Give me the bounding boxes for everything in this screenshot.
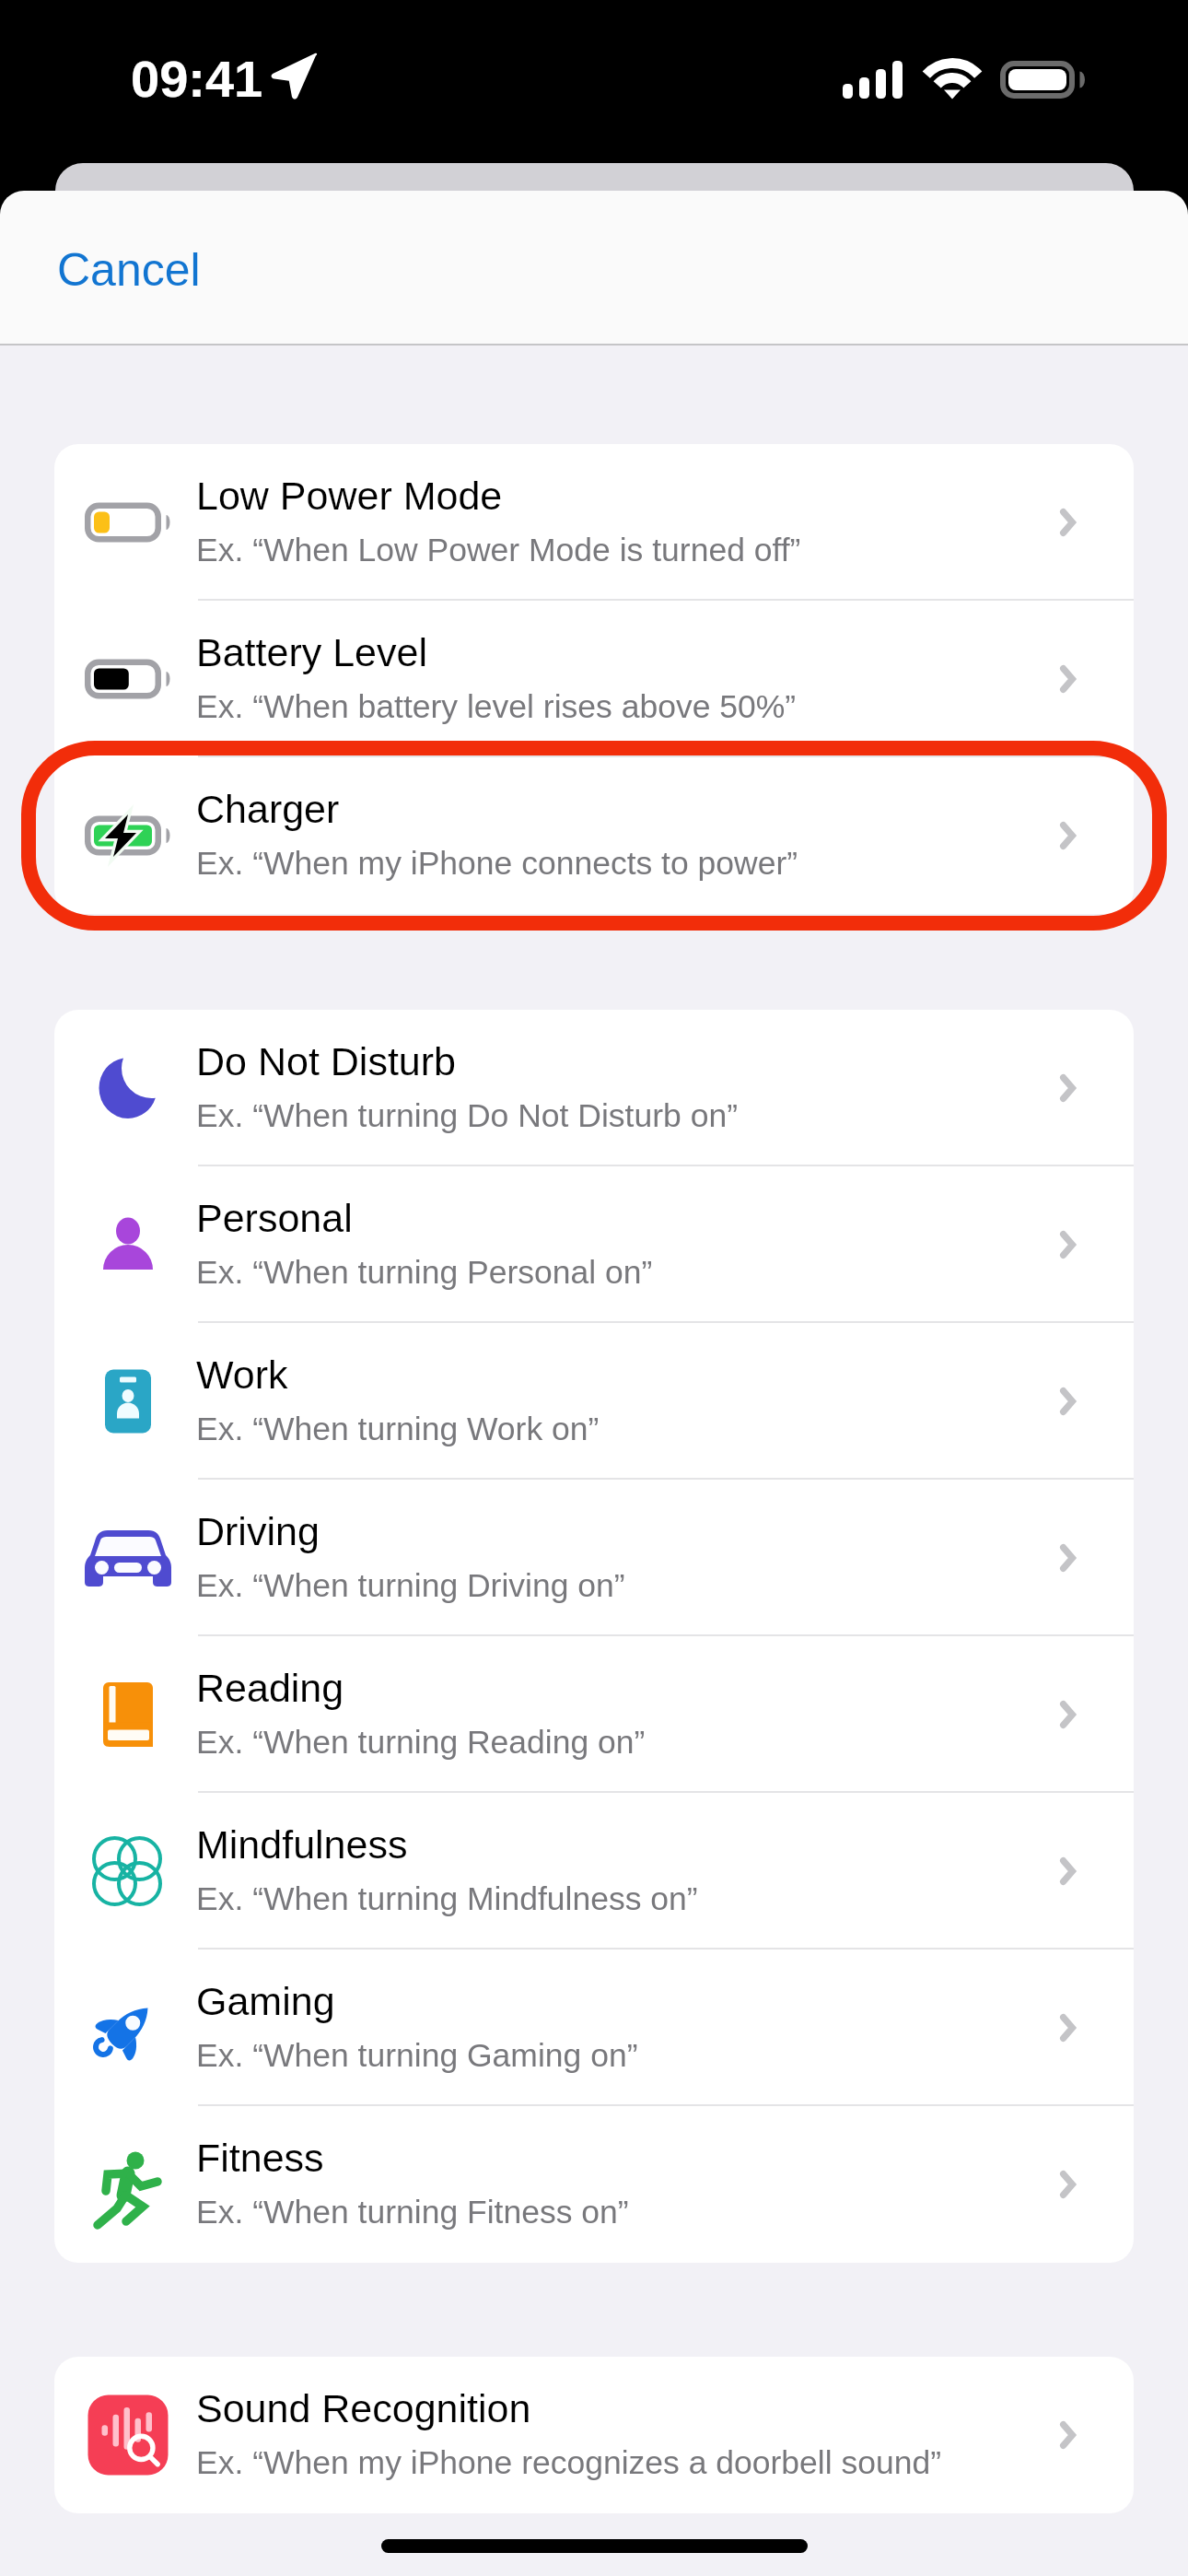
button[interactable]: Sound Recognition xyxy=(54,2357,1134,2513)
button[interactable]: Personal xyxy=(54,1166,1134,1323)
button[interactable]: Fitness xyxy=(54,2106,1134,2263)
staticText: Ex. “When turning Driving on” xyxy=(196,1567,625,1604)
staticText: Battery Level xyxy=(196,630,427,674)
button[interactable]: Gaming xyxy=(54,1950,1134,2106)
staticText: Ex. “When turning Do Not Disturb on” xyxy=(196,1097,738,1134)
staticText: Personal xyxy=(196,1196,353,1240)
other: Open Fitness xyxy=(1001,2106,1134,2263)
staticText: Ex. “When turning Mindfulness on” xyxy=(196,1880,698,1917)
other: Open Personal xyxy=(1001,1166,1134,1323)
staticText: Ex. “When turning Reading on” xyxy=(196,1724,646,1761)
staticText: Ex. “When turning Fitness on” xyxy=(196,2194,629,2231)
button[interactable]: Work xyxy=(54,1323,1134,1480)
button[interactable]: Mindfulness xyxy=(54,1793,1134,1950)
staticText: Ex. “When my iPhone recognizes a doorbel… xyxy=(196,2444,942,2481)
button[interactable]: Driving xyxy=(54,1480,1134,1636)
staticText: Sound Recognition xyxy=(196,2386,531,2430)
other: Open Charger xyxy=(1001,757,1134,914)
other: Open Low Power Mode xyxy=(1001,444,1134,601)
staticText: Ex. “When battery level rises above 50%” xyxy=(196,688,797,725)
staticText: Ex. “When turning Work on” xyxy=(196,1411,600,1447)
other: Open Gaming xyxy=(1001,1950,1134,2106)
button[interactable]: Reading xyxy=(54,1636,1134,1793)
other: Open Mindfulness xyxy=(1001,1793,1134,1950)
staticText: Ex. “When turning Gaming on” xyxy=(196,2037,638,2074)
button[interactable]: Battery Level xyxy=(54,601,1134,757)
staticText: Charger xyxy=(196,787,340,831)
staticText: Gaming xyxy=(196,1979,335,2023)
staticText: Driving xyxy=(196,1509,320,1553)
staticText: Ex. “When my iPhone connects to power” xyxy=(196,845,798,882)
staticText: Reading xyxy=(196,1666,344,1710)
button[interactable]: Cancel xyxy=(37,237,221,303)
other: Open Reading xyxy=(1001,1636,1134,1793)
staticText: Ex. “When turning Personal on” xyxy=(196,1254,653,1291)
staticText: Cancel xyxy=(57,244,201,296)
other: Open Battery Level xyxy=(1001,601,1134,757)
staticText: Fitness xyxy=(196,2136,324,2180)
button[interactable]: Charger xyxy=(54,757,1134,914)
other: Open Sound Recognition xyxy=(1001,2357,1134,2513)
other: Open Do Not Disturb xyxy=(1001,1010,1134,1166)
button[interactable]: Do Not Disturb xyxy=(54,1010,1134,1166)
staticText: Work xyxy=(196,1352,288,1397)
other: Open Driving xyxy=(1001,1480,1134,1636)
staticText: Low Power Mode xyxy=(196,474,503,518)
staticText: Mindfulness xyxy=(196,1822,408,1867)
staticText: Do Not Disturb xyxy=(196,1039,456,1083)
other: Open Work xyxy=(1001,1323,1134,1480)
button[interactable]: Low Power Mode xyxy=(54,444,1134,601)
staticText: Ex. “When Low Power Mode is turned off” xyxy=(196,532,801,568)
staticText: 09:41 xyxy=(131,50,263,108)
